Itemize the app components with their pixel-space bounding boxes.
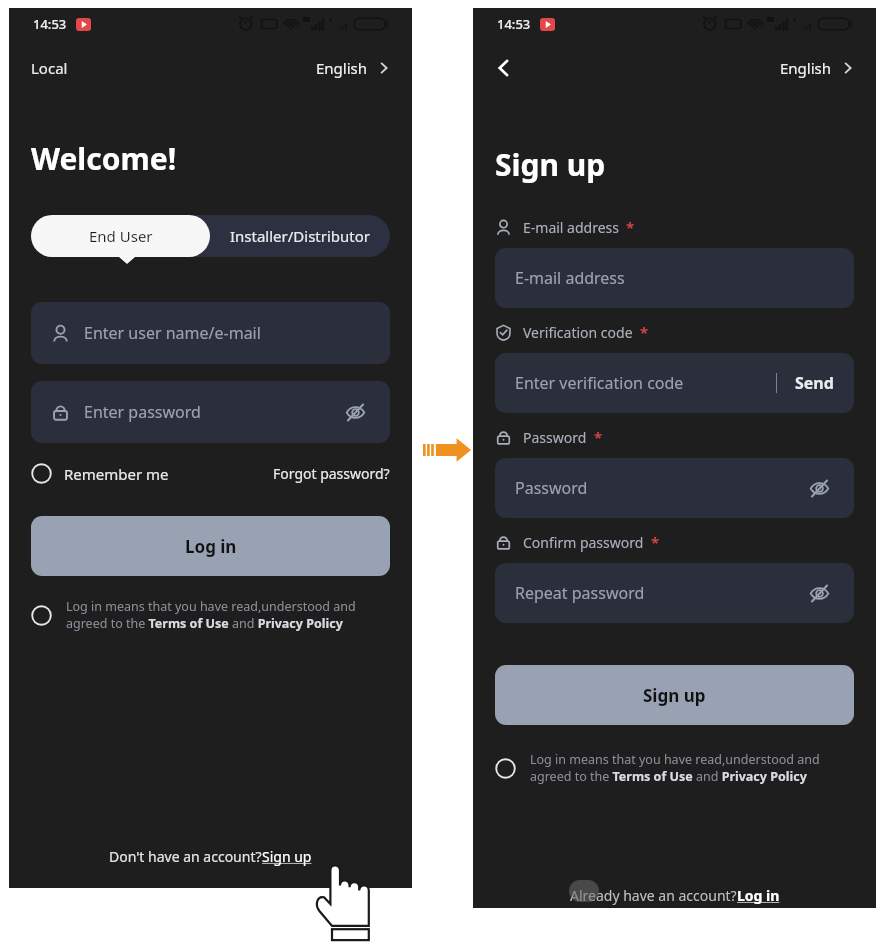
staticText: Welcome! — [31, 138, 177, 179]
button[interactable]: Password — [495, 458, 854, 518]
staticText: Enter password — [84, 401, 201, 423]
staticText: * — [651, 532, 660, 552]
staticText: 14:53 — [33, 15, 67, 33]
staticText: Enter verification code — [515, 372, 684, 394]
staticText: Enter user name/e-mail — [84, 322, 261, 344]
button[interactable]: Toggle password visibility — [340, 397, 370, 427]
staticText: Sign up — [262, 847, 312, 866]
staticText: Log in means that you have read,understo… — [530, 751, 846, 785]
staticText: Don't have an account? — [109, 847, 262, 866]
staticText: E-mail address — [523, 218, 619, 237]
button[interactable]: Back — [495, 51, 529, 85]
button[interactable]: English — [316, 58, 390, 78]
staticText: Installer/Distributor — [230, 226, 371, 246]
button[interactable]: Log in means that you have read,understo… — [495, 751, 854, 785]
staticText: English — [780, 58, 832, 78]
button[interactable]: Repeat password — [495, 563, 854, 623]
staticText: * — [626, 217, 635, 237]
staticText: Remember me — [64, 464, 169, 484]
button[interactable]: Send — [795, 372, 834, 394]
staticText: Log in means that you have read,understo… — [66, 598, 382, 632]
staticText: Log in — [737, 886, 780, 905]
staticText: End User — [89, 226, 153, 246]
button[interactable]: End User — [31, 215, 210, 257]
button[interactable]: Installer/Distributor — [210, 215, 390, 257]
staticText: Repeat password — [515, 582, 645, 604]
button[interactable]: Log in — [31, 516, 390, 576]
button[interactable]: Remember me — [31, 463, 169, 484]
staticText: Forgot password? — [273, 464, 390, 483]
staticText: Password — [523, 428, 587, 447]
button[interactable]: Already have an account? — [570, 886, 780, 905]
staticText: Sign up — [643, 684, 706, 707]
button[interactable]: Enter password — [31, 381, 390, 443]
button[interactable]: Sign up — [495, 665, 854, 725]
button[interactable]: Enter user name/e-mail — [31, 302, 390, 364]
button[interactable]: Enter verification code — [495, 353, 854, 413]
staticText: English — [316, 58, 368, 78]
staticText: 14:53 — [497, 15, 531, 33]
staticText: Password — [515, 477, 588, 499]
staticText: Verification code — [523, 323, 633, 342]
staticText: Local — [31, 58, 68, 78]
staticText: * — [640, 322, 649, 342]
button[interactable]: Don't have an account? — [109, 847, 312, 866]
button[interactable]: Local — [31, 58, 68, 78]
staticText: Confirm password — [523, 533, 644, 552]
staticText: * — [594, 427, 603, 447]
button[interactable]: Toggle password visibility — [804, 473, 834, 503]
staticText: Log in — [185, 535, 237, 558]
button[interactable]: Toggle password visibility — [804, 578, 834, 608]
button[interactable]: English — [780, 58, 854, 78]
button[interactable]: E-mail address — [495, 248, 854, 308]
staticText: Already have an account? — [570, 886, 737, 905]
staticText: E-mail address — [515, 267, 625, 289]
staticText: Sign up — [495, 144, 606, 185]
button[interactable]: Forgot password? — [273, 464, 390, 483]
button[interactable]: Log in means that you have read,understo… — [31, 598, 390, 632]
staticText: Send — [795, 372, 834, 394]
